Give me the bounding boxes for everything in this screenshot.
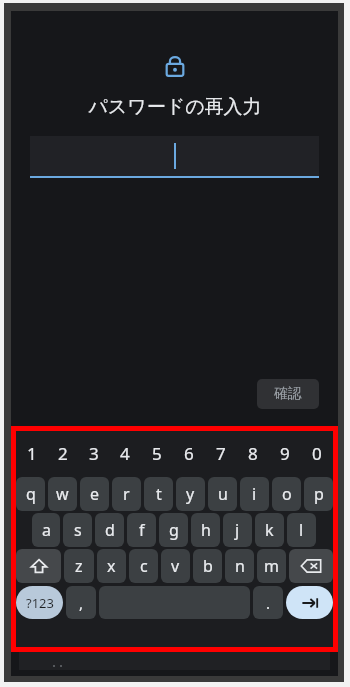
button[interactable]: 6 — [173, 431, 205, 475]
staticText: p — [314, 483, 324, 505]
button[interactable]: m — [257, 549, 286, 583]
staticText: 5 — [152, 442, 162, 465]
staticText: t — [156, 483, 162, 505]
button[interactable]: Backspace — [289, 549, 333, 583]
button[interactable]: 4 — [109, 431, 141, 475]
staticText: z — [75, 555, 83, 577]
staticText: o — [282, 483, 292, 505]
staticText: e — [90, 483, 100, 505]
staticText: y — [186, 483, 195, 505]
button[interactable]: j — [223, 513, 252, 547]
button[interactable]: g — [159, 513, 188, 547]
button[interactable] — [30, 136, 319, 176]
staticText: . — [266, 593, 271, 613]
other: Lock — [162, 55, 188, 81]
staticText: , — [79, 593, 84, 613]
staticText: 6 — [184, 442, 194, 465]
staticText: x — [107, 555, 116, 577]
staticText: パスワードの再入力 — [88, 95, 262, 119]
button[interactable]: a — [32, 513, 60, 547]
button[interactable]: 3 — [78, 431, 109, 475]
staticText: i — [252, 483, 257, 505]
button[interactable]: z — [64, 549, 94, 583]
button[interactable]: q — [16, 477, 45, 511]
staticText: b — [203, 555, 213, 577]
staticText: 8 — [248, 442, 258, 465]
button[interactable]: n — [225, 549, 254, 583]
button[interactable]: c — [129, 549, 158, 583]
button[interactable]: o — [272, 477, 301, 511]
button[interactable]: b — [193, 549, 222, 583]
staticText: 確認 — [274, 385, 302, 403]
button[interactable]: w — [48, 477, 77, 511]
staticText: 7 — [216, 442, 226, 465]
button[interactable]: t — [144, 477, 173, 511]
staticText: 1 — [27, 442, 37, 465]
button[interactable]: d — [95, 513, 124, 547]
staticText: w — [56, 483, 69, 505]
staticText: n — [235, 555, 245, 577]
button[interactable]: r — [112, 477, 141, 511]
button[interactable]: 7 — [205, 431, 237, 475]
staticText: d — [105, 519, 115, 541]
button[interactable]: i — [240, 477, 269, 511]
staticText: 4 — [120, 442, 130, 465]
staticText: l — [299, 519, 304, 541]
button[interactable]: 確認 — [257, 379, 319, 409]
button[interactable]: 5 — [141, 431, 173, 475]
staticText: h — [201, 519, 211, 541]
staticText: 3 — [89, 442, 99, 465]
staticText: 0 — [312, 442, 322, 465]
button[interactable]: h — [191, 513, 220, 547]
button[interactable]: l — [287, 513, 316, 547]
staticText: r — [123, 483, 130, 505]
staticText: 2 — [58, 442, 68, 465]
button[interactable]: y — [176, 477, 205, 511]
staticText: 9 — [280, 442, 290, 465]
staticText: c — [140, 555, 148, 577]
staticText: j — [235, 519, 240, 541]
staticText: u — [218, 483, 228, 505]
button[interactable]: , — [66, 586, 96, 619]
button[interactable]: p — [304, 477, 333, 511]
button[interactable]: v — [161, 549, 190, 583]
button[interactable]: . — [253, 586, 283, 619]
staticText: k — [265, 519, 274, 541]
button[interactable]: 0 — [301, 431, 333, 475]
staticText: q — [26, 483, 36, 505]
staticText: f — [139, 519, 145, 541]
staticText: v — [171, 555, 180, 577]
staticText: ?123 — [26, 594, 54, 612]
button[interactable]: x — [97, 549, 126, 583]
staticText: g — [169, 519, 179, 541]
button[interactable]: f — [127, 513, 156, 547]
button[interactable]: u — [208, 477, 237, 511]
button[interactable]: Enter — [286, 586, 333, 619]
button[interactable]: 9 — [269, 431, 301, 475]
button[interactable]: s — [63, 513, 92, 547]
button[interactable]: Shift — [16, 549, 61, 583]
button[interactable]: k — [255, 513, 284, 547]
button[interactable]: e — [80, 477, 109, 511]
button[interactable]: 2 — [47, 431, 78, 475]
button[interactable]: 8 — [237, 431, 269, 475]
staticText: s — [74, 519, 82, 541]
staticText: m — [264, 555, 279, 577]
button[interactable]: 1 — [16, 431, 47, 475]
button[interactable]: ?123 — [16, 586, 63, 619]
staticText: a — [42, 519, 51, 541]
